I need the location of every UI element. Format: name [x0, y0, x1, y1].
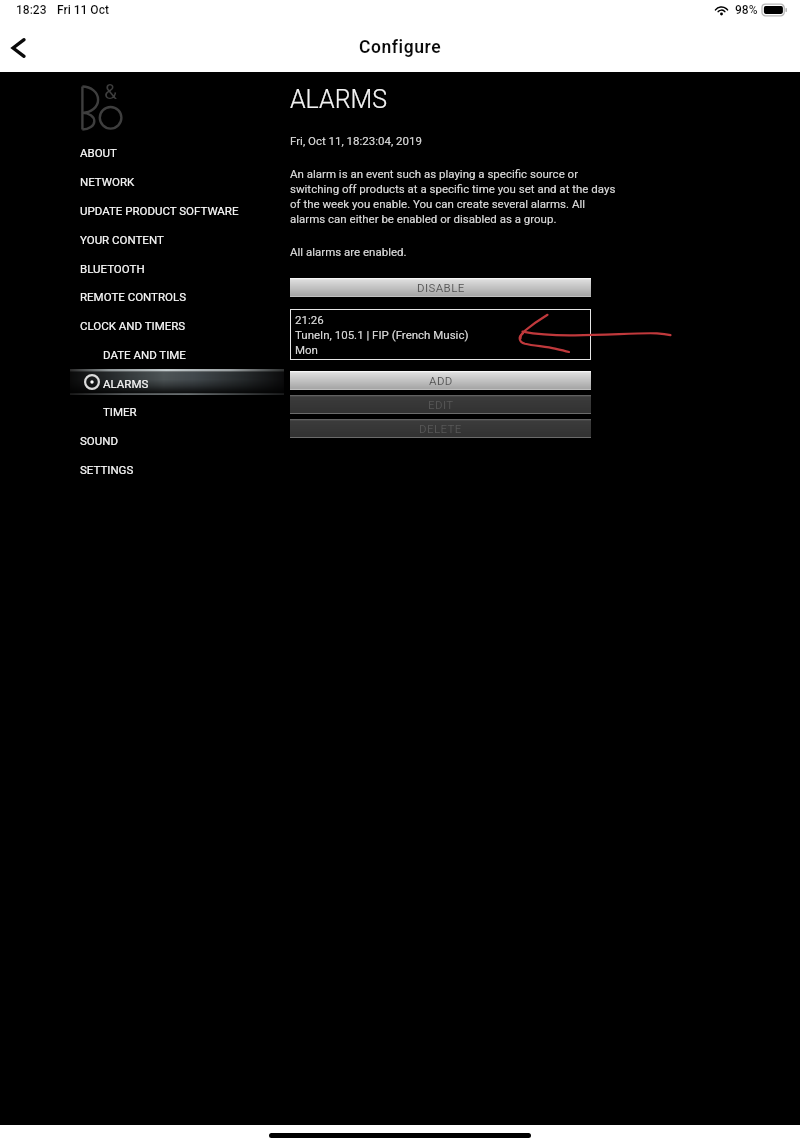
staticText: DISABLE — [417, 281, 465, 294]
staticText: SETTINGS — [80, 463, 134, 476]
button[interactable]: BLUETOOTH — [0, 254, 800, 283]
staticText: Fri 11 Oct — [57, 3, 109, 17]
button[interactable]: DELETE — [290, 419, 591, 438]
button[interactable]: YOUR CONTENT — [0, 225, 800, 254]
staticText: An alarm is an event such as playing a s… — [290, 167, 619, 225]
staticText: 21:26 TuneIn, 105.1 | FIP (French Music)… — [295, 313, 469, 357]
button[interactable]: ADD — [290, 371, 591, 390]
staticText: DATE AND TIME — [103, 348, 186, 361]
button[interactable]: SETTINGS — [0, 455, 800, 484]
staticText: DELETE — [419, 422, 462, 435]
button[interactable]: SOUND — [0, 426, 800, 455]
button[interactable]: ALARMS — [0, 369, 800, 398]
button[interactable]: UPDATE PRODUCT SOFTWARE — [0, 196, 800, 225]
button[interactable]: DATE AND TIME — [0, 340, 800, 369]
button[interactable]: DISABLE — [290, 278, 591, 297]
button[interactable]: Back — [1, 30, 37, 66]
staticText: EDIT — [428, 398, 454, 411]
button[interactable]: ABOUT — [0, 138, 800, 167]
staticText: NETWORK — [80, 175, 135, 188]
staticText: All alarms are enabled. — [290, 245, 407, 258]
button[interactable]: TIMER — [0, 397, 800, 426]
staticText: ABOUT — [80, 146, 117, 159]
staticText: Configure — [359, 37, 442, 58]
button[interactable]: 21:26 TuneIn, 105.1 | FIP (French Music)… — [290, 309, 591, 360]
button[interactable]: NETWORK — [0, 167, 800, 196]
button[interactable]: EDIT — [290, 395, 591, 414]
staticText: Fri, Oct 11, 18:23:04, 2019 — [290, 134, 422, 147]
staticText: SOUND — [80, 434, 118, 447]
staticText: CLOCK AND TIMERS — [80, 319, 186, 332]
staticText: UPDATE PRODUCT SOFTWARE — [80, 204, 239, 217]
staticText: TIMER — [103, 405, 137, 418]
staticText: ADD — [429, 374, 453, 387]
button[interactable]: CLOCK AND TIMERS — [0, 311, 800, 340]
staticText: YOUR CONTENT — [80, 233, 164, 246]
staticText: ALARMS — [290, 85, 387, 114]
staticText: 18:23 — [16, 3, 47, 17]
staticText: REMOTE CONTROLS — [80, 290, 186, 303]
staticText: BLUETOOTH — [80, 262, 145, 275]
staticText: ALARMS — [103, 377, 149, 390]
staticText: 98% — [735, 3, 758, 17]
staticText: & — [104, 80, 118, 105]
button[interactable]: REMOTE CONTROLS — [0, 282, 800, 311]
